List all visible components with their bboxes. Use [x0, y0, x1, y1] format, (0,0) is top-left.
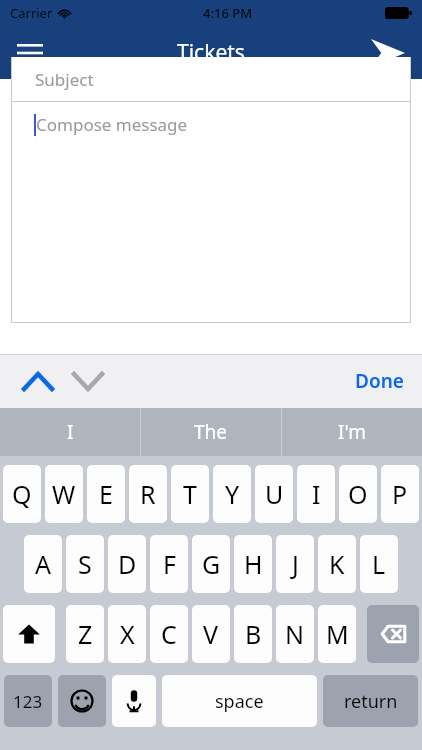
- button[interactable]: L: [360, 535, 398, 593]
- staticText: H: [244, 547, 263, 581]
- staticText: I'm: [338, 419, 366, 445]
- button[interactable]: Done: [355, 368, 404, 394]
- button[interactable]: Menu: [8, 31, 52, 75]
- button[interactable]: K: [318, 535, 356, 593]
- staticText: V: [203, 617, 219, 651]
- staticText: I: [312, 477, 321, 511]
- button[interactable]: Previous field: [16, 359, 60, 403]
- staticText: O: [348, 477, 368, 511]
- staticText: Carrier: [10, 4, 53, 22]
- staticText: K: [329, 547, 345, 581]
- button[interactable]: C: [150, 605, 188, 663]
- button[interactable]: Compose message: [11, 101, 411, 323]
- staticText: U: [265, 477, 284, 511]
- button[interactable]: X: [108, 605, 146, 663]
- button[interactable]: R: [129, 465, 167, 523]
- button[interactable]: E: [87, 465, 125, 523]
- staticText: J: [292, 547, 299, 581]
- button[interactable]: Dictate: [112, 675, 156, 727]
- button[interactable]: Y: [213, 465, 251, 523]
- staticText: X: [120, 617, 135, 651]
- button[interactable]: Next field: [66, 359, 110, 403]
- staticText: P: [392, 477, 408, 511]
- button[interactable]: Subject: [11, 57, 411, 101]
- button[interactable]: B: [234, 605, 272, 663]
- button[interactable]: P: [381, 465, 419, 523]
- button[interactable]: A: [24, 535, 62, 593]
- button[interactable]: Emoji: [58, 675, 106, 727]
- button[interactable]: D: [108, 535, 146, 593]
- staticText: Y: [225, 477, 240, 511]
- button[interactable]: M: [318, 605, 356, 663]
- button[interactable]: U: [255, 465, 293, 523]
- button[interactable]: I: [0, 408, 140, 456]
- staticText: G: [202, 547, 221, 581]
- button[interactable]: 123: [4, 675, 52, 727]
- button[interactable]: W: [45, 465, 83, 523]
- staticText: 123: [13, 690, 43, 713]
- staticText: Done: [355, 368, 404, 394]
- staticText: N: [285, 617, 305, 651]
- button[interactable]: J: [276, 535, 314, 593]
- staticText: R: [140, 477, 156, 511]
- button[interactable]: The: [141, 408, 281, 456]
- staticText: Compose message: [36, 113, 188, 136]
- staticText: A: [35, 547, 51, 581]
- staticText: return: [344, 689, 398, 714]
- staticText: Subject: [35, 68, 94, 91]
- staticText: W: [52, 477, 76, 511]
- button[interactable]: space: [162, 675, 317, 727]
- button[interactable]: return: [323, 675, 418, 727]
- button[interactable]: Send: [364, 29, 412, 77]
- staticText: C: [161, 617, 177, 651]
- button[interactable]: F: [150, 535, 188, 593]
- button[interactable]: S: [66, 535, 104, 593]
- button[interactable]: I: [297, 465, 335, 523]
- staticText: F: [163, 547, 176, 581]
- staticText: 4:16 PM: [203, 4, 253, 22]
- button[interactable]: O: [339, 465, 377, 523]
- button[interactable]: T: [171, 465, 209, 523]
- staticText: I: [67, 419, 74, 445]
- staticText: E: [99, 477, 113, 511]
- button[interactable]: I'm: [282, 408, 422, 456]
- staticText: S: [78, 547, 92, 581]
- staticText: M: [326, 617, 349, 651]
- staticText: Q: [12, 477, 32, 511]
- button[interactable]: V: [192, 605, 230, 663]
- staticText: Tickets: [177, 38, 245, 67]
- button[interactable]: N: [276, 605, 314, 663]
- button[interactable]: Shift: [3, 605, 55, 663]
- button[interactable]: Q: [3, 465, 41, 523]
- staticText: Z: [78, 617, 93, 651]
- staticText: The: [194, 419, 228, 445]
- staticText: B: [245, 617, 262, 651]
- staticText: space: [215, 689, 264, 714]
- staticText: D: [118, 547, 137, 581]
- button[interactable]: G: [192, 535, 230, 593]
- button[interactable]: Z: [66, 605, 104, 663]
- button[interactable]: H: [234, 535, 272, 593]
- staticText: L: [372, 547, 386, 581]
- staticText: T: [183, 477, 197, 511]
- button[interactable]: Backspace: [367, 605, 419, 663]
